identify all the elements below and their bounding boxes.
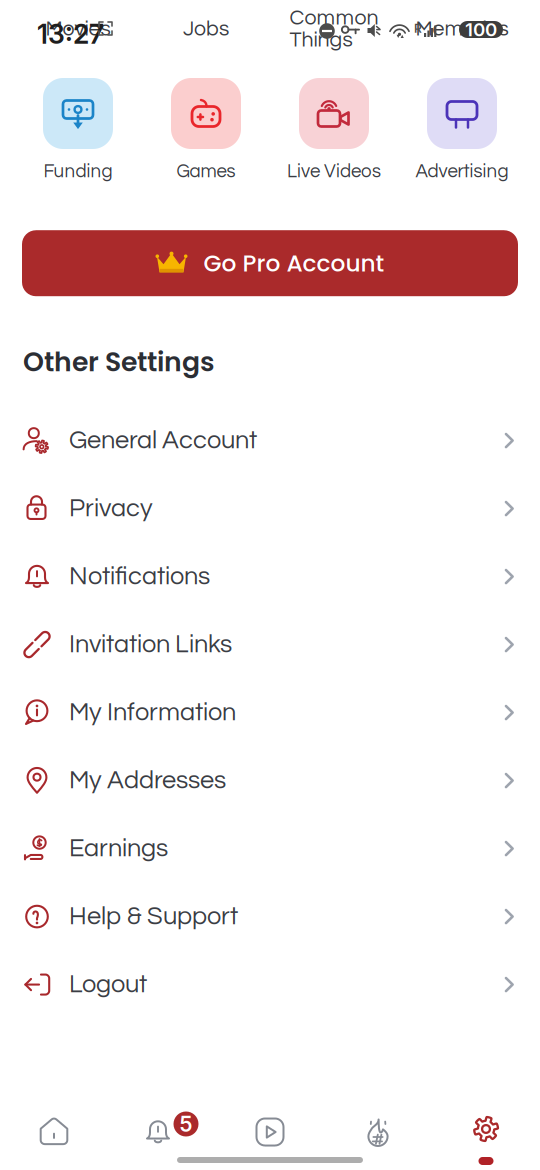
button[interactable]: Logout — [0, 951, 540, 1019]
staticText: Earnings — [69, 835, 168, 862]
staticText: Live Videos — [287, 162, 381, 181]
button[interactable]: My Information — [0, 679, 540, 747]
staticText: Invitation Links — [69, 631, 232, 658]
staticText: General Account — [69, 427, 257, 454]
button[interactable]: Videos — [216, 1103, 324, 1165]
staticText: Notifications — [69, 563, 210, 590]
staticText: Games — [176, 162, 235, 181]
staticText: Privacy — [69, 495, 153, 522]
button[interactable]: Advertising — [398, 78, 526, 181]
button[interactable]: My Addresses — [0, 747, 540, 815]
button[interactable]: Home — [0, 1103, 108, 1165]
staticText: R — [414, 21, 422, 35]
staticText: Logout — [69, 971, 147, 998]
staticText: Funding — [43, 162, 112, 181]
button[interactable]: Trending — [324, 1103, 432, 1165]
staticText: Common Things — [289, 7, 378, 51]
button[interactable]: Settings — [432, 1103, 540, 1165]
staticText: 5 — [179, 1111, 192, 1137]
button[interactable]: Notifications — [108, 1103, 216, 1165]
button[interactable]: Live Videos — [270, 78, 398, 181]
staticText: Jobs — [183, 18, 229, 40]
button[interactable]: Invitation Links — [0, 611, 540, 679]
button[interactable]: Help & Support — [0, 883, 540, 951]
button[interactable]: Earnings — [0, 815, 540, 883]
button[interactable]: Privacy — [0, 475, 540, 543]
staticText: Help & Support — [69, 903, 238, 930]
staticText: Memories — [415, 18, 508, 40]
button[interactable]: General Account — [0, 407, 540, 475]
staticText: 100 — [465, 18, 497, 41]
button[interactable]: Notifications — [0, 543, 540, 611]
button[interactable]: Go Pro Account — [22, 230, 518, 296]
button[interactable]: Funding — [14, 78, 142, 181]
staticText: Other Settings — [23, 343, 215, 380]
staticText: Advertising — [415, 162, 508, 181]
staticText: Go Pro Account — [203, 247, 384, 280]
button[interactable]: Games — [142, 78, 270, 181]
staticText: 13:27 — [37, 18, 104, 50]
staticText: Movies — [45, 18, 110, 40]
staticText: My Information — [69, 699, 236, 726]
staticText: My Addresses — [69, 767, 226, 794]
